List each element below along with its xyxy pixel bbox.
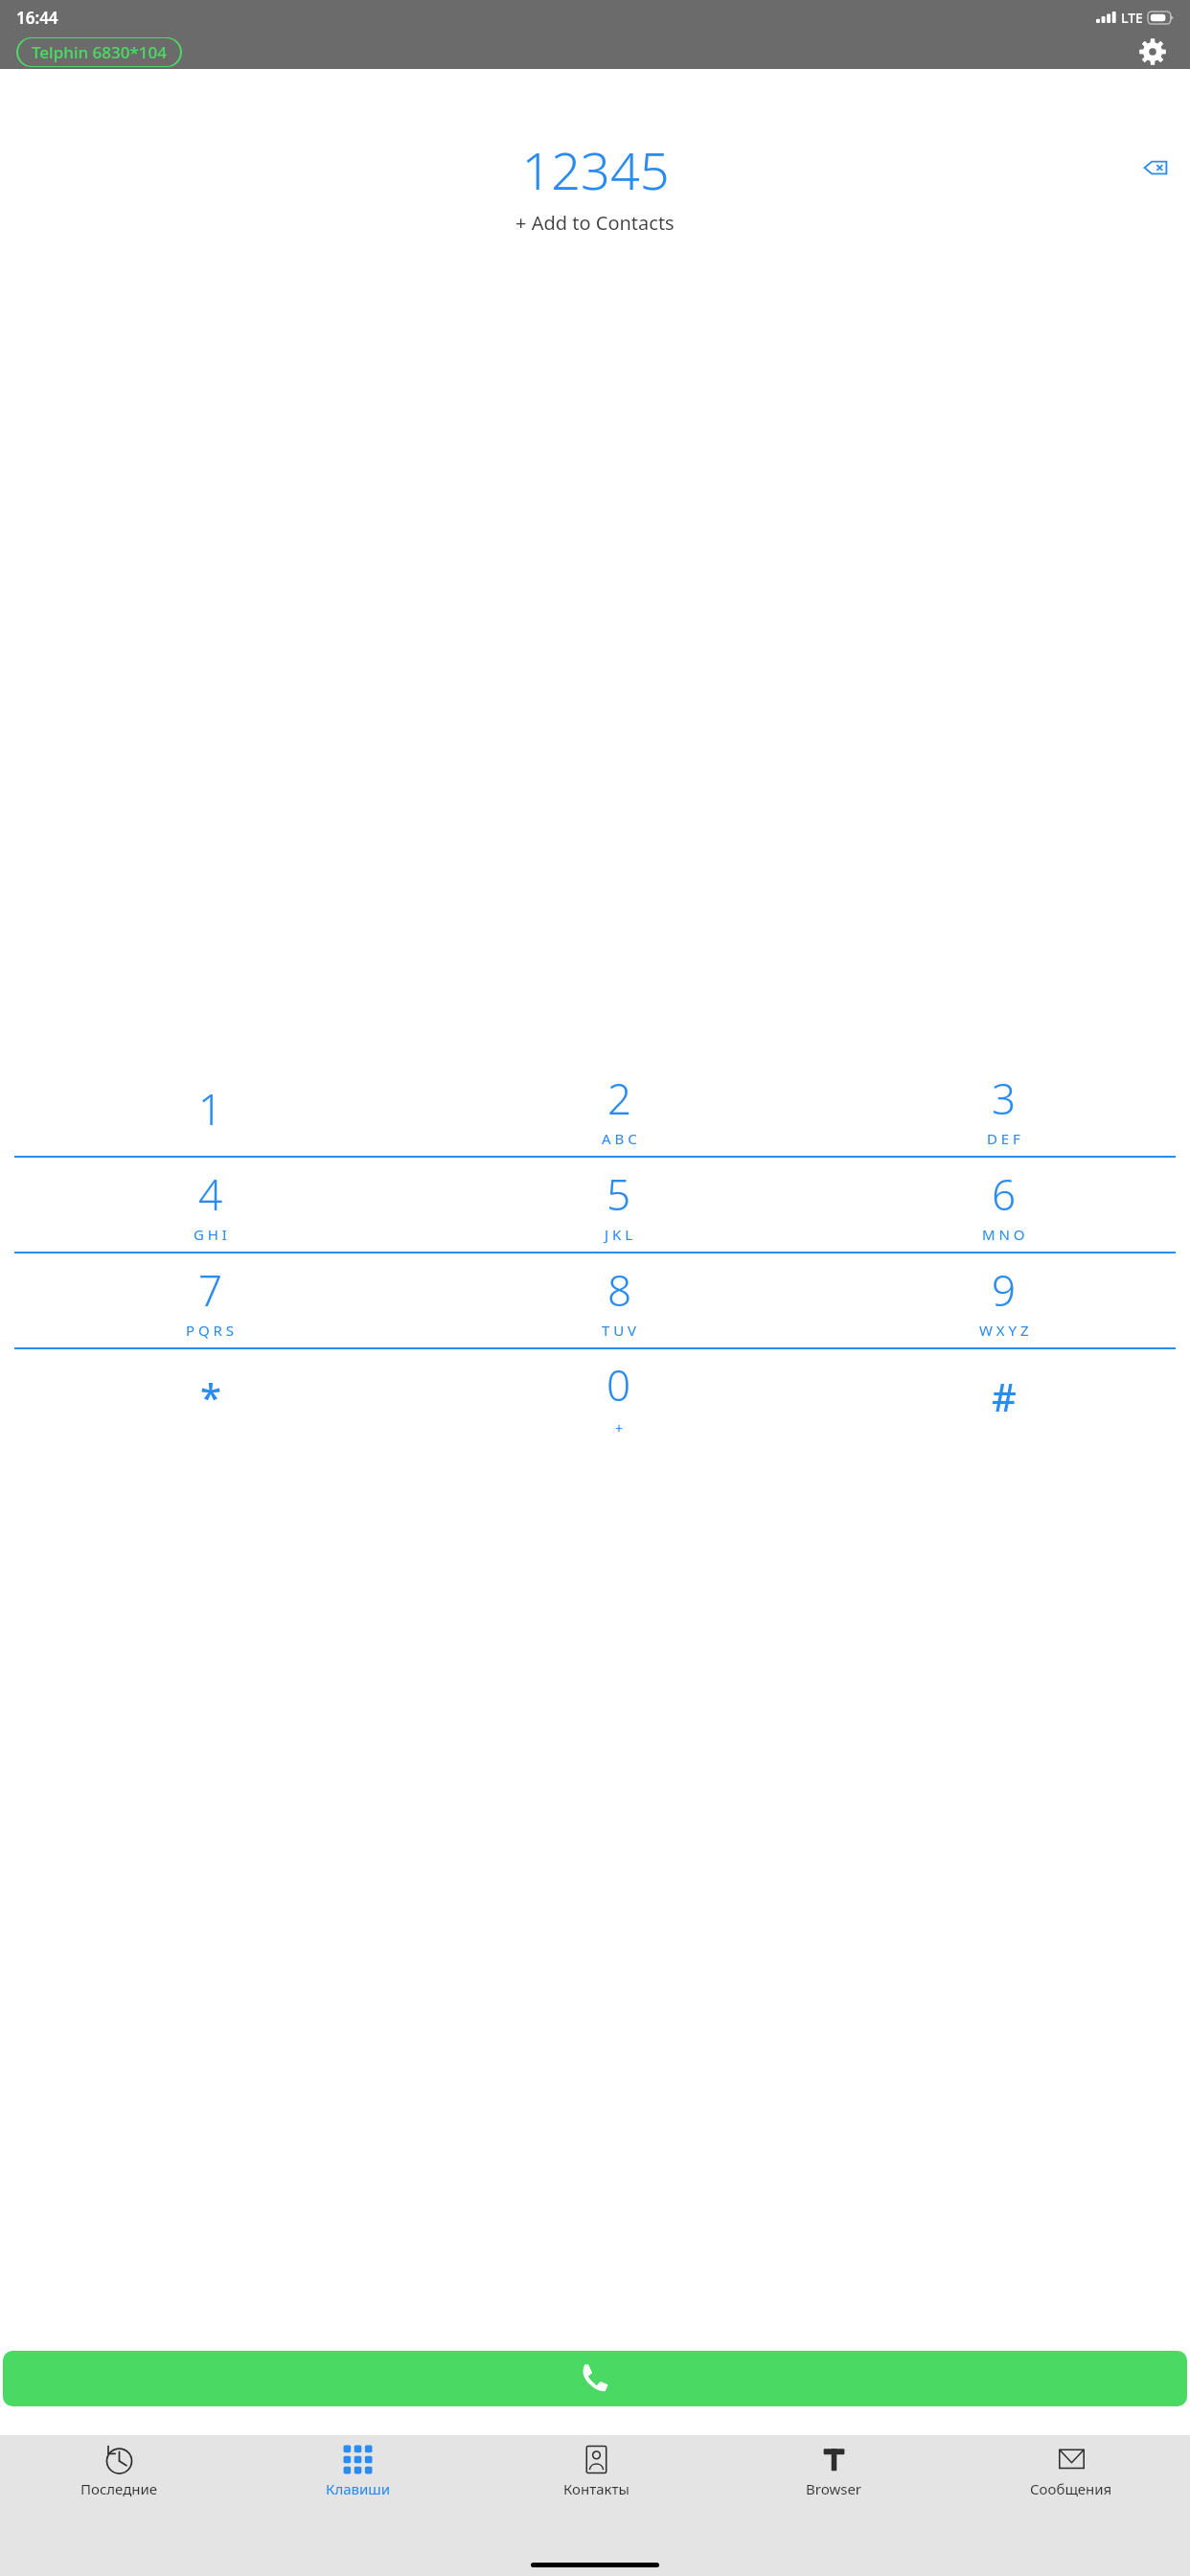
button[interactable]: 4 [0,1158,421,1252]
button[interactable]: Telphin 6830*104 [16,37,182,67]
button[interactable]: 1 [0,1062,421,1156]
staticText: 3 [992,1069,1017,1127]
button[interactable]: Backspace [1131,143,1180,193]
button[interactable]: Call [3,2351,1187,2406]
button[interactable]: 8 [421,1253,817,1347]
staticText: 9 [992,1261,1017,1319]
staticText: LTE [1121,9,1143,27]
button[interactable]: 9 [817,1253,1190,1347]
button[interactable]: 3 [817,1062,1190,1156]
staticText: Контакты [563,2479,629,2498]
staticText: Browser [806,2479,862,2498]
staticText: J K L [605,1225,633,1244]
staticText: M N O [982,1225,1025,1244]
staticText: Telphin 6830*104 [32,41,167,63]
staticText: D E F [987,1129,1020,1148]
staticText: 0 [606,1356,631,1414]
staticText: P Q R S [186,1321,235,1340]
button[interactable]: # [817,1349,1190,1443]
staticText: Последние [80,2479,158,2498]
staticText: G H I [194,1225,227,1244]
staticText: A B C [602,1129,637,1148]
staticText: 12345 [521,134,670,201]
staticText: # [992,1370,1017,1422]
staticText: T U V [602,1321,637,1340]
button[interactable]: Сообщения [952,2445,1190,2576]
staticText: W X Y Z [979,1321,1029,1340]
button[interactable]: 5 [421,1158,817,1252]
button[interactable]: 7 [0,1253,421,1347]
button[interactable]: Последние [0,2445,239,2576]
staticText: Сообщения [1030,2479,1112,2498]
staticText: 4 [198,1165,223,1223]
button[interactable]: Settings [1132,34,1174,69]
staticText: * [200,1370,221,1422]
button[interactable]: Контакты [477,2445,715,2576]
staticText: 5 [606,1165,631,1223]
staticText: 2 [607,1069,632,1127]
staticText: + Add to Contacts [515,210,675,236]
staticText: 6 [992,1165,1017,1223]
button[interactable]: + Add to Contacts [0,207,1190,238]
button[interactable]: 6 [817,1158,1190,1252]
staticText: Клавиши [326,2479,391,2498]
button[interactable]: Клавиши [239,2445,477,2576]
staticText: 1 [198,1080,223,1138]
button[interactable]: 0 [421,1349,817,1443]
button[interactable]: Browser [715,2445,952,2576]
staticText: 16:44 [16,7,58,29]
staticText: 8 [607,1261,632,1319]
staticText: 7 [198,1261,223,1319]
staticText: + [615,1419,624,1437]
button[interactable]: 2 [421,1062,817,1156]
button[interactable]: * [0,1349,421,1443]
